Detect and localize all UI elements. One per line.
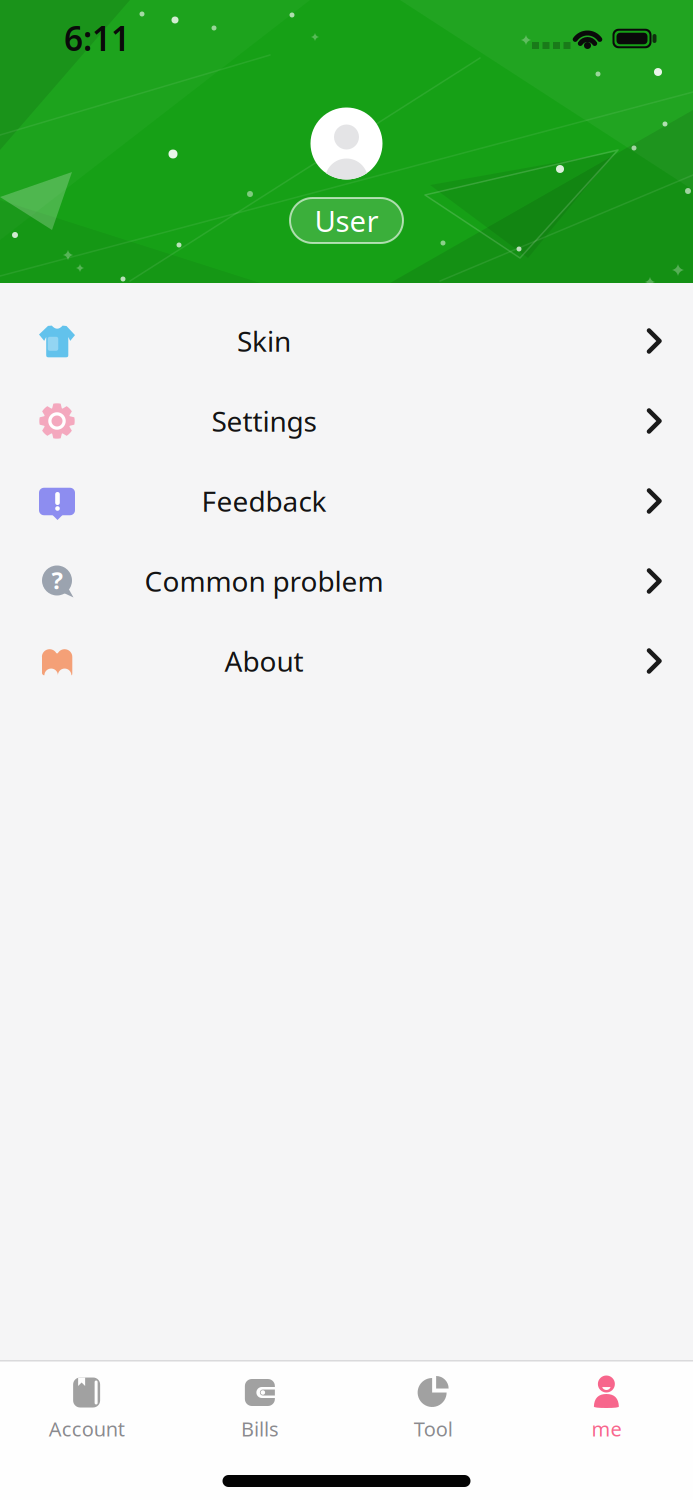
staticText: Settings (211, 402, 316, 440)
staticText: Skin (237, 322, 291, 360)
staticText: Account (49, 1415, 125, 1442)
staticText: Common problem (144, 562, 383, 600)
button[interactable]: Tool (346, 1374, 520, 1442)
button[interactable]: Account (0, 1374, 173, 1442)
staticText: About (224, 642, 303, 680)
staticText: ? (51, 564, 62, 596)
staticText: User (314, 201, 378, 240)
staticText: 6:11 (64, 16, 130, 60)
button[interactable]: About (0, 621, 693, 701)
staticText: Tool (414, 1415, 453, 1442)
button[interactable]: me (520, 1374, 693, 1442)
button[interactable]: Settings (0, 381, 693, 461)
staticText: Bills (241, 1415, 279, 1442)
button[interactable]: User (290, 198, 403, 243)
staticText: Feedback (201, 482, 326, 520)
button[interactable]: Bills (173, 1374, 346, 1442)
button[interactable]: Feedback (0, 461, 693, 541)
button[interactable]: ? (0, 541, 693, 621)
staticText: me (591, 1415, 621, 1442)
button[interactable]: Skin (0, 301, 693, 381)
